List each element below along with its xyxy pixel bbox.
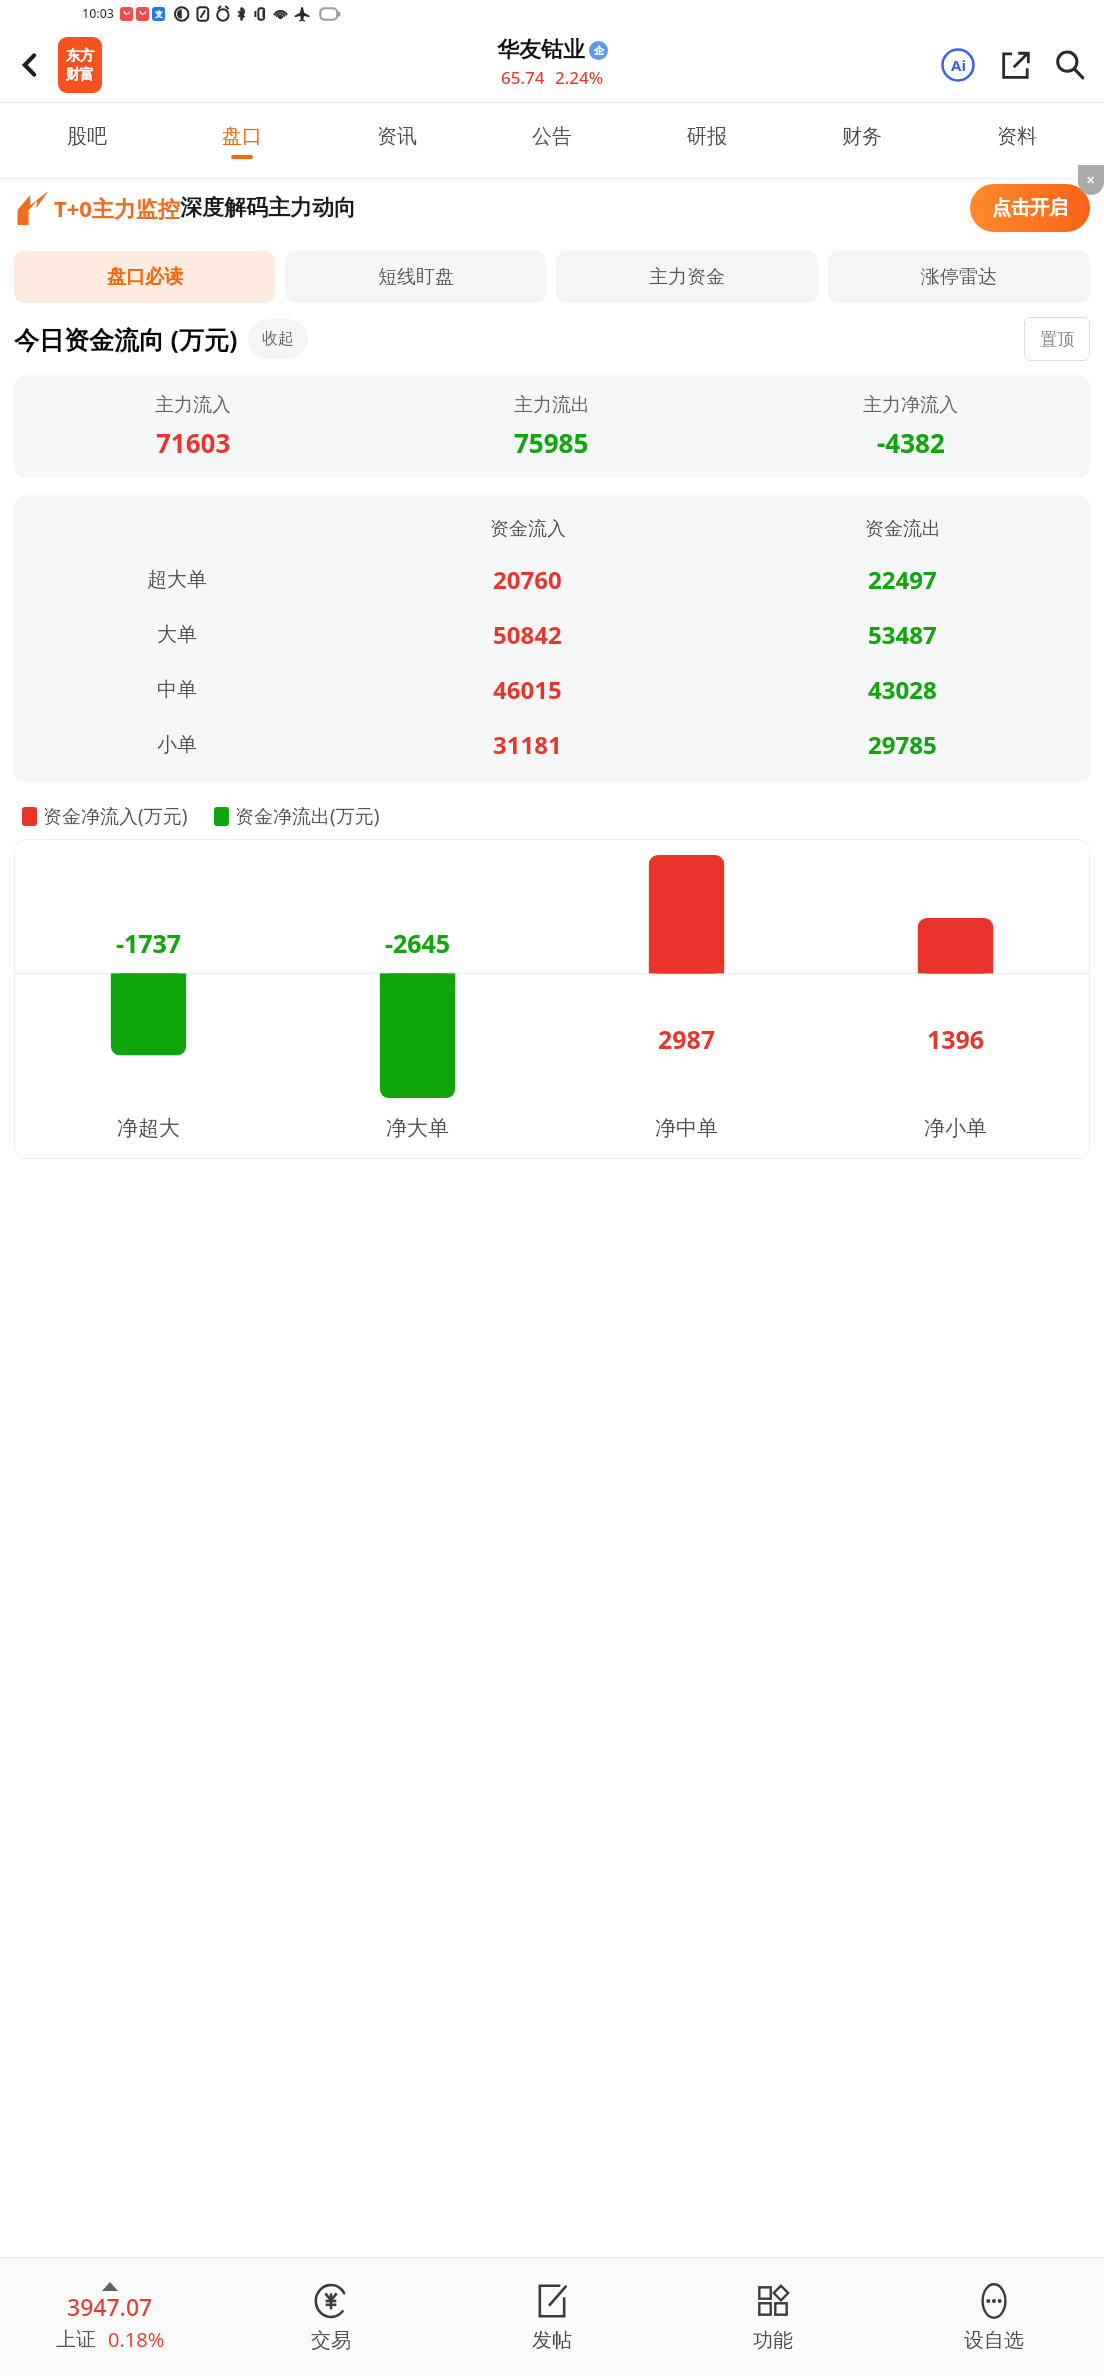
button[interactable]: Close xyxy=(1078,165,1104,195)
staticText: 大单 xyxy=(157,622,197,647)
staticText: 资金净流出(万元) xyxy=(235,803,380,829)
button[interactable]: 置顶 xyxy=(1024,317,1090,361)
staticText: 置顶 xyxy=(1040,329,1074,350)
button[interactable]: Share xyxy=(990,39,1042,91)
staticText: 31181 xyxy=(493,728,562,761)
staticText: ✕ xyxy=(1086,174,1096,187)
button[interactable]: 发帖 xyxy=(441,2258,662,2376)
staticText: -2645 xyxy=(283,926,552,960)
staticText: 企 xyxy=(594,44,604,57)
button[interactable]: 3947.07 xyxy=(0,2258,220,2376)
button[interactable]: 点击开启 xyxy=(970,184,1090,232)
staticText: T+0主力监控 xyxy=(54,193,180,223)
staticText: 小单 xyxy=(157,732,197,757)
button[interactable]: 财务 xyxy=(784,103,939,179)
staticText: 东方 xyxy=(66,47,94,65)
button[interactable]: 主力流入 xyxy=(14,375,1090,478)
staticText: 盘口必读 xyxy=(107,265,183,289)
staticText: 46015 xyxy=(493,673,562,706)
button[interactable]: 资讯 xyxy=(319,103,474,179)
staticText: 收起 xyxy=(262,329,294,349)
button[interactable]: Search xyxy=(1044,39,1096,91)
button[interactable]: 东方 xyxy=(58,37,102,93)
staticText: 股吧 xyxy=(67,124,107,149)
staticText: 财务 xyxy=(842,124,882,149)
staticText: 2.24% xyxy=(555,66,604,89)
staticText: 主力净流入 xyxy=(863,393,958,417)
staticText: 75985 xyxy=(514,425,589,460)
staticText: 主力资金 xyxy=(649,265,725,289)
staticText: 资讯 xyxy=(377,124,417,149)
staticText: 盘口 xyxy=(222,124,262,149)
staticText: 功能 xyxy=(753,2328,793,2353)
staticText: 设自选 xyxy=(964,2328,1024,2353)
button[interactable]: -1737 xyxy=(14,839,1090,1159)
button[interactable]: 收起 xyxy=(248,319,308,359)
button[interactable]: 盘口 xyxy=(164,103,319,179)
button[interactable]: Back xyxy=(4,39,56,91)
staticText: 净大单 xyxy=(283,1115,552,1141)
staticText: -4382 xyxy=(877,425,945,460)
staticText: 2987 xyxy=(552,1022,821,1056)
staticText: Ai xyxy=(951,55,966,75)
staticText: 中单 xyxy=(157,677,197,702)
staticText: 50842 xyxy=(493,618,562,651)
staticText: 净超大 xyxy=(14,1115,283,1141)
staticText: 43028 xyxy=(868,673,937,706)
button[interactable]: 涨停雷达 xyxy=(828,251,1090,303)
button[interactable]: 研报 xyxy=(629,103,784,179)
button[interactable]: 交易 xyxy=(220,2258,441,2376)
button[interactable]: 设自选 xyxy=(883,2258,1104,2376)
staticText: 净中单 xyxy=(552,1115,821,1141)
staticText: 深度解码主力动向 xyxy=(180,194,356,222)
staticText: 71603 xyxy=(156,425,231,460)
button[interactable]: 主力资金 xyxy=(556,251,818,303)
staticText: 资料 xyxy=(997,124,1037,149)
staticText: 资金净流入(万元) xyxy=(43,803,188,829)
staticText: 涨停雷达 xyxy=(921,265,997,289)
button[interactable]: 盘口必读 xyxy=(14,251,275,303)
staticText: 研报 xyxy=(687,124,727,149)
button[interactable]: 资料 xyxy=(939,103,1094,179)
staticText: 华友钴业 xyxy=(497,36,585,64)
staticText: 65.74 xyxy=(501,66,545,89)
staticText: 资金流入 xyxy=(490,517,566,541)
staticText: 发帖 xyxy=(532,2328,572,2353)
button[interactable]: 短线盯盘 xyxy=(285,251,546,303)
staticText: 财富 xyxy=(66,66,94,84)
staticText: 53487 xyxy=(868,618,937,651)
staticText: 主力流入 xyxy=(155,393,231,417)
staticText: 资金流出 xyxy=(865,517,941,541)
button[interactable]: 资金流入 xyxy=(14,495,1090,783)
button[interactable]: 功能 xyxy=(662,2258,883,2376)
staticText: 20760 xyxy=(493,563,562,596)
staticText: 公告 xyxy=(532,124,572,149)
staticText: 10:03 xyxy=(82,5,115,22)
staticText: 上证 xyxy=(56,2327,96,2352)
staticText: 主力流出 xyxy=(514,393,590,417)
staticText: -1737 xyxy=(14,926,283,960)
staticText: 29785 xyxy=(868,728,937,761)
staticText: 点击开启 xyxy=(992,196,1068,220)
staticText: 超大单 xyxy=(147,567,207,592)
staticText: 短线盯盘 xyxy=(378,265,454,289)
staticText: 0.18% xyxy=(108,2326,165,2353)
staticText: 净小单 xyxy=(821,1115,1090,1141)
staticText: 今日资金流向 (万元) xyxy=(14,322,238,356)
staticText: 1396 xyxy=(821,1022,1090,1056)
staticText: 支 xyxy=(155,9,163,19)
staticText: 交易 xyxy=(311,2328,351,2353)
button[interactable]: 公告 xyxy=(474,103,629,179)
button[interactable]: AI xyxy=(932,39,984,91)
button[interactable]: 股吧 xyxy=(10,103,164,179)
staticText: 3947.07 xyxy=(67,2291,153,2322)
staticText: 22497 xyxy=(868,563,937,596)
button[interactable]: T+0主力监控 xyxy=(16,179,1090,237)
